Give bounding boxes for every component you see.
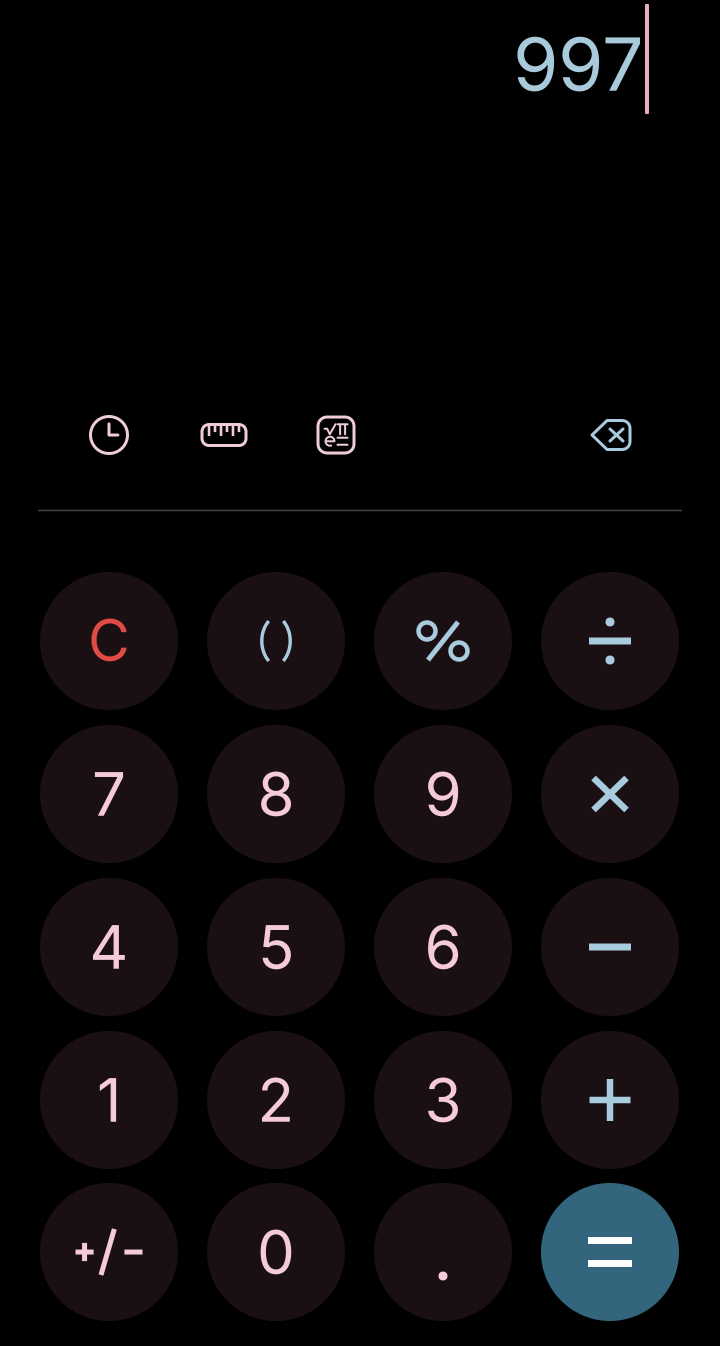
button[interactable]: Toggle sign bbox=[40, 1183, 178, 1321]
button[interactable]: History bbox=[73, 399, 145, 471]
button[interactable]: 6 bbox=[374, 878, 512, 1016]
button[interactable]: 9 bbox=[374, 725, 512, 863]
staticText: 8 bbox=[257, 758, 294, 830]
staticText: 2 bbox=[257, 1064, 294, 1136]
button[interactable]: Minus bbox=[541, 878, 679, 1016]
button[interactable]: C bbox=[40, 572, 178, 710]
staticText: 0 bbox=[257, 1216, 295, 1288]
button[interactable]: Delete bbox=[575, 399, 647, 471]
staticText: 1 bbox=[97, 1064, 121, 1136]
button[interactable]: 5 bbox=[207, 878, 345, 1016]
staticText: 997 bbox=[513, 20, 644, 108]
staticText: C bbox=[88, 605, 130, 675]
button[interactable]: 3 bbox=[374, 1031, 512, 1169]
button[interactable]: 7 bbox=[40, 725, 178, 863]
button[interactable]: Multiply bbox=[541, 725, 679, 863]
button[interactable]: Equals bbox=[541, 1183, 679, 1321]
button[interactable]: Unit converter bbox=[188, 399, 260, 471]
button[interactable]: 2 bbox=[207, 1031, 345, 1169]
button[interactable]: Parentheses bbox=[207, 572, 345, 710]
button[interactable]: Plus bbox=[541, 1031, 679, 1169]
staticText: 5 bbox=[258, 911, 294, 983]
staticText: 4 bbox=[89, 911, 128, 983]
button[interactable]: Percent bbox=[374, 572, 512, 710]
staticText: 3 bbox=[424, 1064, 461, 1136]
staticText: 6 bbox=[424, 911, 461, 983]
button[interactable]: Formulas bbox=[300, 399, 372, 471]
button[interactable]: Divide bbox=[541, 572, 679, 710]
button[interactable]: Decimal point bbox=[374, 1183, 512, 1321]
staticText: 7 bbox=[92, 758, 126, 830]
button[interactable]: 8 bbox=[207, 725, 345, 863]
button[interactable]: 4 bbox=[40, 878, 178, 1016]
button[interactable]: 1 bbox=[40, 1031, 178, 1169]
staticText: 9 bbox=[424, 758, 461, 830]
button[interactable]: 0 bbox=[207, 1183, 345, 1321]
